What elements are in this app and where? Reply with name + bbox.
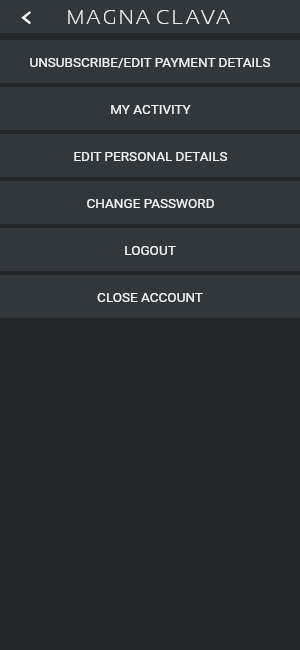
staticText: EDIT PERSONAL DETAILS bbox=[73, 148, 228, 164]
button[interactable]: EDIT PERSONAL DETAILS bbox=[0, 134, 300, 177]
staticText: CLOSE ACCOUNT bbox=[97, 289, 203, 305]
staticText: MY ACTIVITY bbox=[110, 101, 191, 117]
button[interactable]: LOGOUT bbox=[0, 228, 300, 271]
button[interactable]: MY ACTIVITY bbox=[0, 87, 300, 130]
button[interactable]: Back bbox=[0, 0, 42, 33]
staticText: CHANGE PASSWORD bbox=[86, 195, 215, 211]
button[interactable]: CHANGE PASSWORD bbox=[0, 181, 300, 224]
staticText: MAGNA CLAVA bbox=[67, 6, 233, 28]
button[interactable]: CLOSE ACCOUNT bbox=[0, 275, 300, 318]
staticText: LOGOUT bbox=[124, 242, 176, 258]
staticText: UNSUBSCRIBE/EDIT PAYMENT DETAILS bbox=[29, 54, 271, 70]
button[interactable]: UNSUBSCRIBE/EDIT PAYMENT DETAILS bbox=[0, 40, 300, 83]
